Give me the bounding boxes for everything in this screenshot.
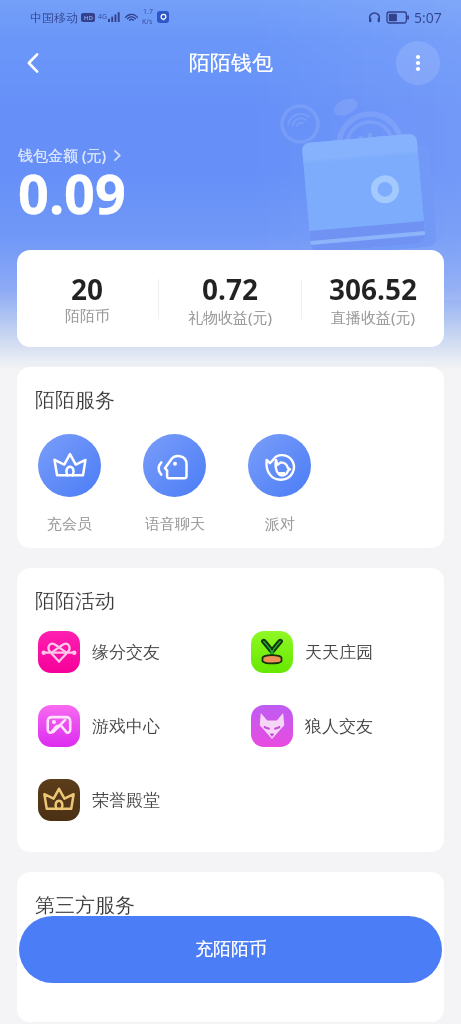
staticText: 5:07	[414, 8, 442, 27]
staticText: 陌陌服务	[35, 388, 115, 413]
staticText: HD	[84, 14, 93, 22]
staticText: 天天庄园	[305, 642, 373, 663]
staticText: 20	[71, 270, 104, 308]
staticText: 充会员	[47, 515, 92, 534]
button[interactable]: 狼人交友	[251, 705, 444, 747]
staticText: 缘分交友	[92, 642, 160, 663]
staticText: 306.52	[329, 270, 417, 308]
staticText: 语音聊天	[145, 515, 205, 534]
staticText: 充陌陌币	[195, 938, 267, 961]
staticText: 荣誉殿堂	[92, 790, 160, 811]
staticText: 礼物收益(元)	[188, 307, 273, 327]
button[interactable]: 语音聊天	[122, 434, 227, 534]
staticText: 0.72	[202, 270, 258, 308]
button[interactable]: More options	[396, 41, 440, 85]
staticText: 1.7	[143, 7, 153, 17]
staticText: 直播收益(元)	[331, 307, 416, 327]
button[interactable]: Back	[11, 41, 55, 85]
button[interactable]: 20	[17, 270, 158, 327]
button[interactable]: 派对	[227, 434, 332, 534]
staticText: 派对	[265, 515, 295, 534]
staticText: 狼人交友	[305, 716, 373, 737]
button[interactable]: 充陌陌币	[19, 916, 442, 983]
button[interactable]: 充会员	[17, 434, 122, 534]
staticText: 第三方服务	[35, 893, 135, 918]
staticText: 0.09	[18, 156, 126, 230]
button[interactable]: 荣誉殿堂	[38, 779, 230, 821]
button[interactable]: 天天庄园	[251, 631, 444, 673]
staticText: 游戏中心	[92, 716, 160, 737]
staticText: 4G	[98, 12, 108, 22]
button[interactable]: 0.72	[159, 270, 301, 328]
staticText: 陌陌币	[65, 307, 110, 326]
staticText: K/s	[142, 17, 153, 27]
button[interactable]: 游戏中心	[38, 705, 230, 747]
staticText: 钱包金额 (元)	[18, 145, 106, 165]
staticText: 陌陌钱包	[189, 50, 273, 76]
staticText: 中国移动	[30, 10, 78, 25]
button[interactable]: 缘分交友	[38, 631, 230, 673]
staticText: 陌陌活动	[35, 589, 115, 614]
button[interactable]: 306.52	[302, 270, 444, 328]
